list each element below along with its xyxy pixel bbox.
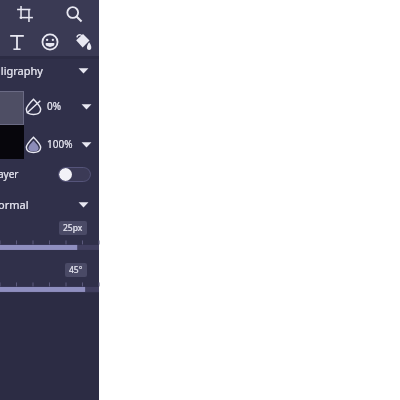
staticText: ayer bbox=[0, 167, 19, 181]
button[interactable]: 100% bbox=[0, 127, 99, 161]
staticText: lligraphy bbox=[0, 63, 43, 78]
button[interactable]: ormal bbox=[0, 193, 99, 215]
staticText: 100% bbox=[47, 137, 73, 151]
staticText: 25px bbox=[63, 222, 83, 234]
button[interactable]: Text tool bbox=[0, 28, 33, 56]
button[interactable]: Slider 25px bbox=[0, 239, 99, 251]
button[interactable]: Search bbox=[49, 0, 99, 28]
staticText: ormal bbox=[0, 197, 29, 212]
button[interactable]: lligraphy bbox=[0, 59, 99, 82]
button[interactable]: Primary colour bbox=[0, 91, 24, 125]
button[interactable]: ayer bbox=[0, 161, 99, 187]
button[interactable]: Fill bbox=[66, 28, 99, 56]
button[interactable]: Crop bbox=[0, 0, 49, 28]
button[interactable]: 0% bbox=[0, 89, 99, 123]
button[interactable]: Stickers bbox=[33, 28, 66, 56]
button[interactable]: Slider 45° bbox=[0, 281, 99, 293]
staticText: 0% bbox=[47, 99, 62, 113]
staticText: 45° bbox=[69, 264, 83, 276]
